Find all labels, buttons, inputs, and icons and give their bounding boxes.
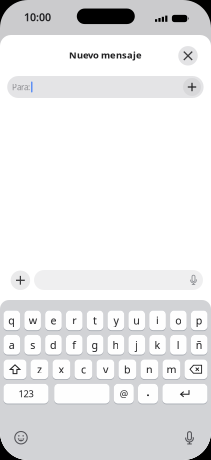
staticText: u	[133, 313, 140, 327]
staticText: ñ	[196, 338, 203, 352]
staticText: o	[175, 313, 181, 327]
button[interactable]: b	[118, 359, 136, 380]
button[interactable]	[3, 359, 26, 380]
staticText: m	[166, 362, 176, 376]
button[interactable]: @	[114, 384, 134, 404]
staticText: l	[177, 338, 180, 352]
staticText: c	[81, 362, 86, 376]
button[interactable]	[184, 359, 207, 380]
button[interactable]: e	[45, 310, 62, 331]
button[interactable]: r	[66, 310, 83, 331]
button[interactable]	[162, 384, 207, 404]
staticText: v	[103, 362, 108, 376]
staticText: z	[37, 362, 42, 376]
button[interactable]: t	[87, 310, 103, 331]
button[interactable]	[138, 384, 158, 404]
button[interactable]	[178, 46, 198, 65]
staticText: f	[72, 338, 76, 352]
button[interactable]: n	[140, 359, 158, 380]
button[interactable]: m	[162, 359, 180, 380]
staticText: Para:	[12, 82, 30, 92]
button[interactable]	[184, 431, 194, 444]
staticText: a	[9, 338, 15, 352]
button[interactable]: y	[108, 310, 124, 331]
staticText: b	[124, 362, 131, 376]
button[interactable]: v	[96, 359, 114, 380]
staticText: g	[92, 338, 99, 352]
staticText: i	[156, 313, 159, 327]
staticText: 10:00	[24, 10, 51, 24]
staticText: x	[58, 362, 64, 376]
staticText: p	[196, 313, 203, 327]
button[interactable]: ñ	[191, 335, 207, 355]
button[interactable]: k	[149, 335, 166, 355]
button[interactable]: l	[170, 335, 187, 355]
staticText: t	[93, 313, 97, 327]
button[interactable]	[54, 384, 110, 404]
button[interactable]	[14, 431, 27, 444]
staticText: r	[72, 313, 76, 327]
button[interactable]: Para:	[7, 76, 204, 98]
button[interactable]: i	[149, 310, 166, 331]
button[interactable]	[11, 271, 30, 290]
button[interactable]: f	[66, 335, 83, 355]
button[interactable]: j	[128, 335, 145, 355]
button[interactable]: a	[3, 335, 20, 355]
staticText: Nuevo mensaje	[69, 49, 142, 61]
staticText: k	[154, 338, 160, 352]
staticText: n	[146, 362, 153, 376]
button[interactable]: p	[191, 310, 207, 331]
button[interactable]: c	[74, 359, 92, 380]
button[interactable]: w	[24, 310, 41, 331]
staticText: j	[135, 338, 138, 352]
button[interactable]	[34, 270, 203, 290]
staticText: w	[29, 313, 37, 327]
button[interactable]: q	[3, 310, 20, 331]
button[interactable]	[183, 78, 201, 96]
button[interactable]: d	[45, 335, 62, 355]
staticText: s	[30, 338, 35, 352]
staticText: @	[120, 387, 128, 400]
button[interactable]: z	[30, 359, 48, 380]
staticText: q	[8, 313, 15, 327]
button[interactable]: s	[24, 335, 41, 355]
staticText: h	[112, 338, 119, 352]
staticText: d	[50, 338, 57, 352]
button[interactable]: x	[52, 359, 70, 380]
staticText: y	[113, 313, 118, 327]
button[interactable]: h	[108, 335, 124, 355]
button[interactable]: g	[87, 335, 103, 355]
button[interactable]: u	[128, 310, 145, 331]
button[interactable]: 123	[3, 384, 48, 404]
staticText: 123	[18, 387, 33, 400]
button[interactable]: o	[170, 310, 187, 331]
staticText: e	[50, 313, 56, 327]
